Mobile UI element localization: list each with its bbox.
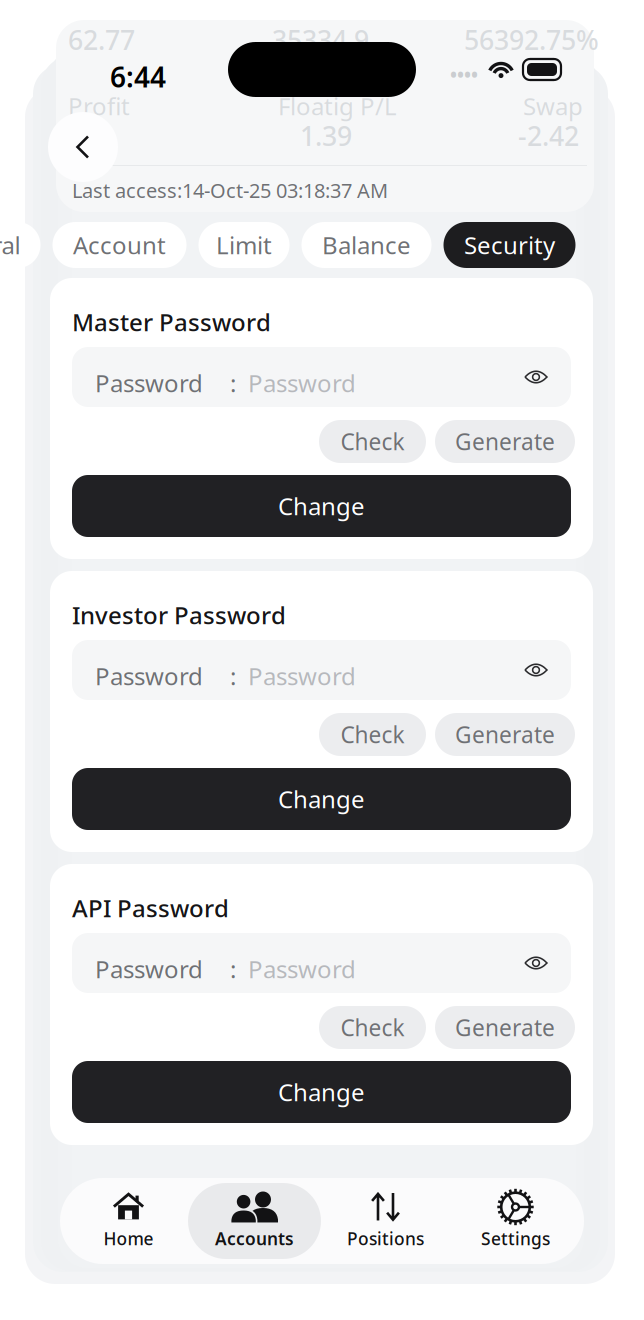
button[interactable]: Check [319, 420, 426, 463]
staticText: Check [340, 1012, 404, 1042]
staticText: : [230, 953, 236, 985]
staticText: Change [278, 490, 365, 522]
staticText: Floatig P/L [278, 90, 397, 122]
button[interactable]: Accounts [188, 1183, 321, 1259]
staticText: Profit [68, 90, 130, 122]
button[interactable]: Limit [198, 222, 289, 268]
button[interactable]: Home [62, 1183, 195, 1259]
staticText: Check [340, 719, 404, 749]
button[interactable]: Change [72, 1061, 571, 1123]
staticText: General [0, 229, 20, 261]
staticText: 62.77 [68, 22, 135, 57]
button[interactable]: Check [319, 1006, 426, 1049]
staticText: : [230, 367, 236, 399]
button[interactable]: Security [443, 222, 575, 268]
staticText: -2.42 [518, 118, 579, 153]
button[interactable]: Change [72, 475, 571, 537]
staticText: : [230, 660, 236, 692]
staticText: Password [248, 953, 356, 985]
staticText: Positions [347, 1227, 424, 1250]
button[interactable]: Generate [435, 420, 575, 463]
button[interactable]: Balance [301, 222, 431, 268]
staticText: 56392.75% [464, 22, 599, 57]
staticText: •••• [450, 62, 478, 87]
staticText: Accounts [215, 1227, 294, 1250]
button[interactable]: General [0, 222, 40, 268]
staticText: 35334.9 [272, 22, 369, 57]
button[interactable]: Account [52, 222, 186, 268]
staticText: Generate [455, 719, 555, 749]
staticText: Password [248, 367, 356, 399]
button[interactable]: Generate [435, 1006, 575, 1049]
staticText: Security [464, 229, 555, 261]
button[interactable]: Show password [524, 954, 548, 972]
button[interactable]: Settings [449, 1183, 582, 1259]
staticText: Balance [322, 229, 411, 261]
staticText: Master Password [72, 306, 271, 338]
button[interactable]: Change [72, 768, 571, 830]
staticText: Limit [216, 229, 272, 261]
staticText: Generate [455, 1012, 555, 1042]
staticText: Change [278, 783, 365, 815]
button[interactable]: Positions [319, 1183, 452, 1259]
staticText: Settings [481, 1227, 550, 1250]
staticText: API Password [72, 892, 229, 924]
button[interactable]: Show password [524, 368, 548, 386]
button[interactable]: Show password [524, 661, 548, 679]
staticText: Investor Password [72, 599, 286, 631]
staticText: Swap [523, 90, 583, 122]
staticText: Password [248, 660, 356, 692]
button[interactable]: Generate [435, 713, 575, 756]
staticText: Change [278, 1076, 365, 1108]
staticText: Home [103, 1227, 153, 1250]
staticText: Password [95, 953, 203, 985]
staticText: Account [73, 229, 166, 261]
staticText: Password [95, 660, 203, 692]
staticText: Password [95, 367, 203, 399]
button[interactable]: Back [48, 112, 118, 182]
staticText: Generate [455, 426, 555, 456]
staticText: 6:44 [110, 58, 166, 95]
button[interactable]: Check [319, 713, 426, 756]
staticText: 1.39 [300, 118, 352, 153]
staticText: Last access:14-Oct-25 03:18:37 AM [72, 177, 388, 204]
staticText: Check [340, 426, 404, 456]
